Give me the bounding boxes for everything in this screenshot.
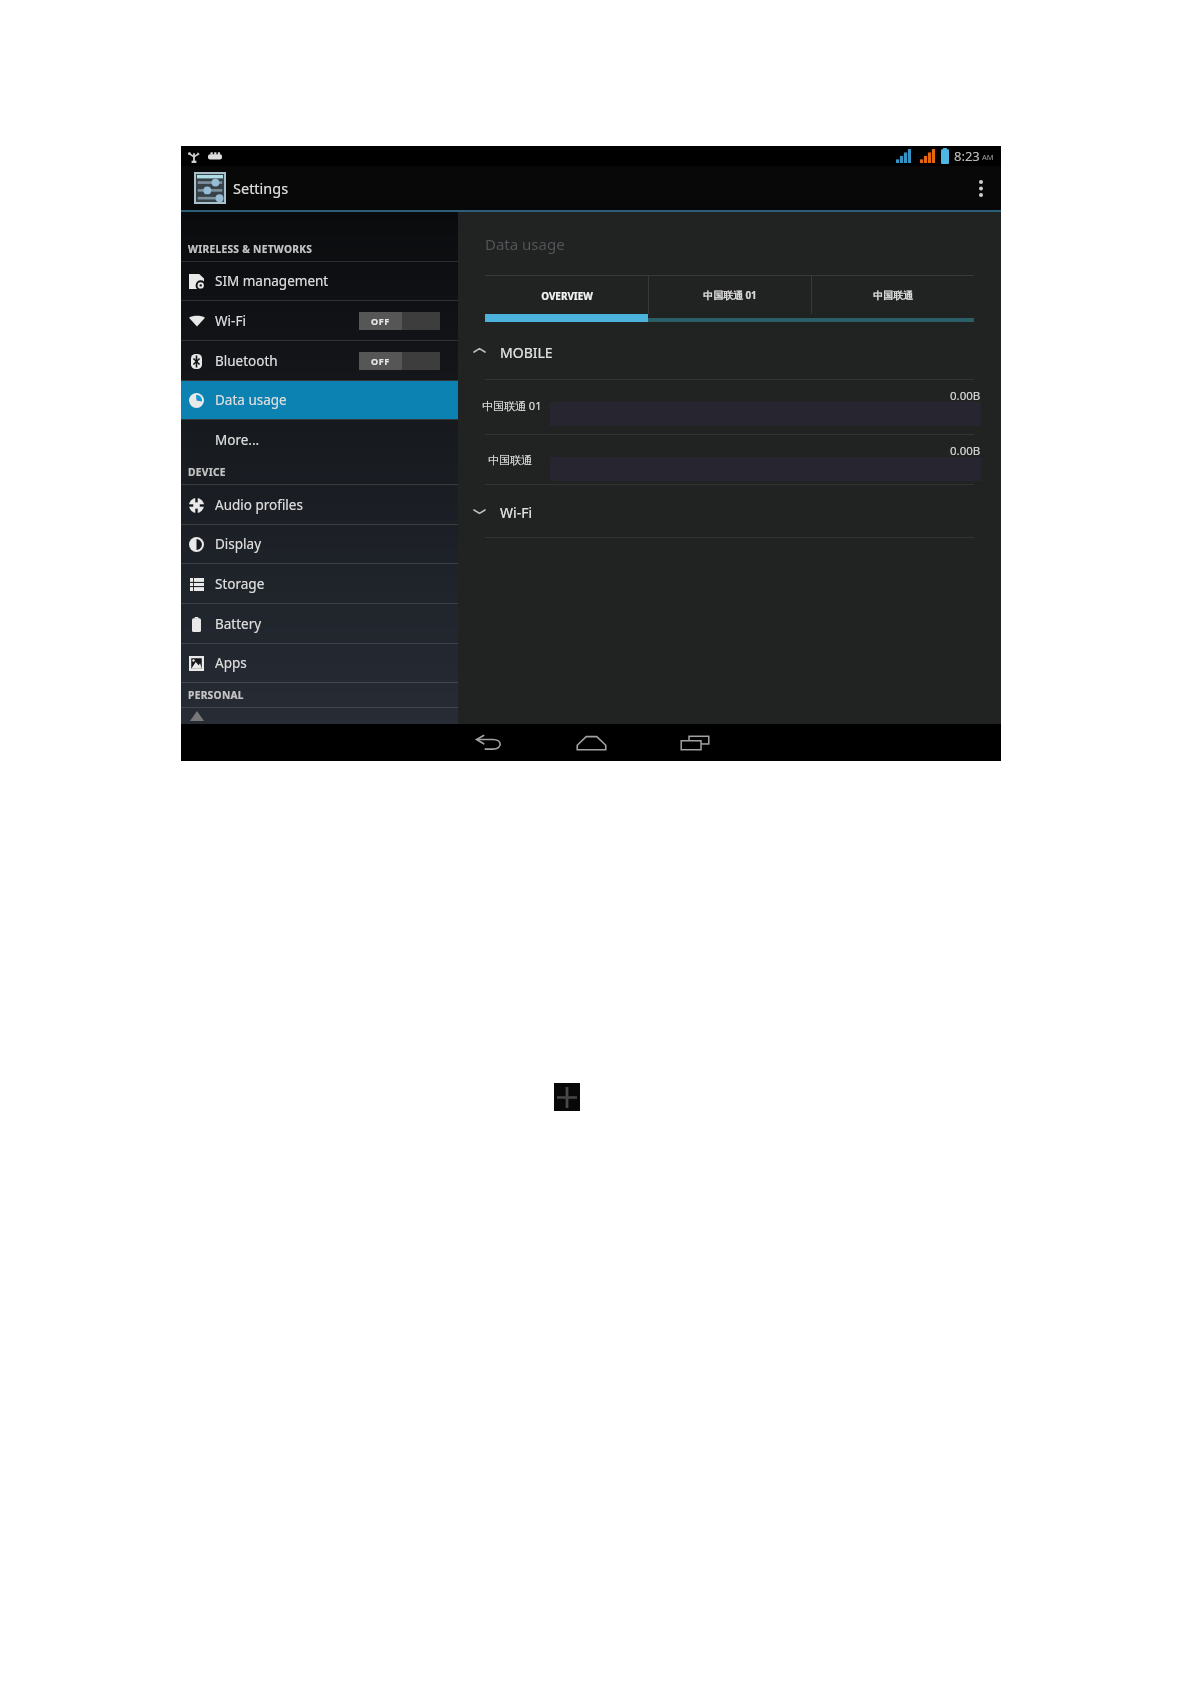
staticText: OFF [371, 315, 390, 327]
button[interactable] [181, 708, 458, 724]
staticText: OFF [371, 355, 390, 367]
button[interactable]: Back [458, 724, 520, 761]
button[interactable]: MOBILE [458, 322, 1001, 379]
button[interactable]: Storage [181, 564, 458, 603]
button[interactable]: Home [560, 724, 622, 761]
staticText: Display [215, 535, 262, 553]
staticText: DEVICE [188, 465, 226, 479]
staticText: Settings [233, 178, 289, 198]
button[interactable]: Bluetooth [181, 341, 458, 380]
button[interactable]: 中国联通 01 [649, 276, 811, 314]
staticText: 中国联通 01 [703, 288, 757, 302]
staticText: 中国联通 [488, 453, 532, 467]
button[interactable]: 中国联通 [812, 276, 974, 314]
button[interactable]: Battery [181, 604, 458, 643]
staticText: 中国联通 01 [482, 398, 542, 413]
button[interactable]: OVERVIEW [485, 276, 648, 314]
staticText: 0.00B [950, 443, 981, 459]
button[interactable]: More options [961, 166, 1001, 210]
staticText: Apps [215, 654, 247, 672]
button[interactable]: Wi-Fi [458, 485, 1001, 537]
button[interactable]: Recent apps [664, 724, 726, 761]
button[interactable]: Apps [181, 644, 458, 682]
staticText: 8:23 [954, 147, 980, 165]
staticText: Data usage [485, 234, 565, 254]
button[interactable]: 中国联通 [458, 435, 1001, 484]
staticText: SIM management [215, 272, 329, 290]
button[interactable]: OFF [359, 312, 440, 330]
staticText: Storage [215, 575, 265, 593]
button[interactable]: Wi-Fi [181, 301, 458, 340]
staticText: Wi-Fi [215, 312, 246, 330]
button[interactable]: Display [181, 525, 458, 563]
button[interactable]: OFF [359, 352, 440, 370]
staticText: WIRELESS & NETWORKS [188, 242, 313, 256]
staticText: MOBILE [500, 343, 553, 362]
staticText: OVERVIEW [541, 289, 593, 302]
button[interactable]: Data usage [181, 381, 458, 419]
staticText: 0.00B [950, 388, 981, 404]
button[interactable]: SIM management [181, 262, 458, 300]
button[interactable]: More... [181, 420, 458, 459]
staticText: Data usage [215, 391, 287, 409]
staticText: AM [982, 152, 994, 162]
staticText: Battery [215, 615, 262, 633]
staticText: PERSONAL [188, 688, 244, 702]
button[interactable]: 中国联通 01 [458, 380, 1001, 434]
staticText: Audio profiles [215, 496, 303, 514]
staticText: Bluetooth [215, 352, 278, 370]
button[interactable]: Audio profiles [181, 485, 458, 524]
button[interactable]: Add [554, 1083, 580, 1111]
staticText: More... [215, 431, 260, 449]
staticText: Wi-Fi [500, 503, 533, 522]
staticText: 中国联通 [873, 289, 913, 301]
